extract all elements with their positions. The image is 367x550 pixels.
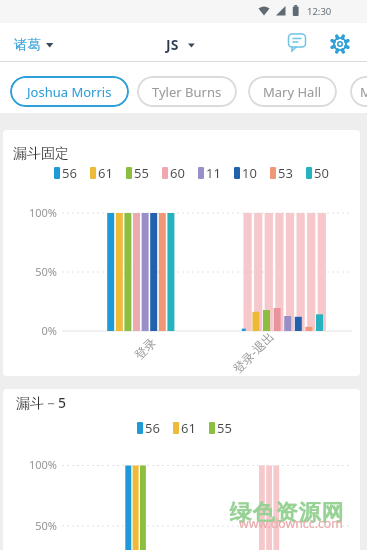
staticText: 56 bbox=[145, 419, 160, 437]
staticText: 漏斗－5 bbox=[16, 393, 67, 412]
button[interactable]: Mary Smith bbox=[350, 76, 367, 107]
staticText: 55 bbox=[217, 419, 232, 437]
staticText: 11 bbox=[206, 164, 221, 182]
staticText: 50% bbox=[3, 264, 57, 279]
staticText: 诸葛 bbox=[14, 36, 41, 53]
button[interactable] bbox=[284, 30, 310, 56]
staticText: 60 bbox=[170, 164, 185, 182]
staticText: 登录-退出 bbox=[229, 328, 277, 376]
staticText: 61 bbox=[181, 419, 196, 437]
staticText: 55 bbox=[134, 164, 149, 182]
staticText: 100% bbox=[3, 205, 57, 220]
staticText: Mary Hall bbox=[263, 83, 322, 101]
staticText: www.downcc.com bbox=[239, 515, 343, 532]
staticText: 50 bbox=[314, 164, 329, 182]
button[interactable]: JS bbox=[160, 32, 204, 58]
button[interactable]: 诸葛 bbox=[8, 32, 64, 58]
staticText: 登录 bbox=[131, 335, 159, 362]
staticText: 漏斗固定 bbox=[13, 145, 69, 163]
staticText: Joshua Morris bbox=[27, 83, 112, 101]
staticText: Tyler Burns bbox=[152, 83, 222, 101]
button[interactable]: Joshua Morris bbox=[10, 76, 129, 107]
staticText: 100% bbox=[3, 457, 57, 472]
staticText: 53 bbox=[278, 164, 293, 182]
staticText: 50% bbox=[3, 518, 57, 533]
staticText: 12:30 bbox=[307, 5, 332, 18]
button[interactable] bbox=[330, 31, 356, 57]
staticText: 10 bbox=[242, 164, 257, 182]
staticText: JS bbox=[166, 35, 179, 54]
staticText: 绿色资源网 bbox=[229, 499, 344, 527]
button[interactable]: Tyler Burns bbox=[137, 76, 237, 107]
staticText: 56 bbox=[62, 164, 77, 182]
staticText: Mary Smith bbox=[360, 83, 367, 101]
staticText: 61 bbox=[98, 164, 113, 182]
button[interactable]: Mary Hall bbox=[248, 76, 337, 107]
staticText: 0% bbox=[3, 323, 57, 338]
